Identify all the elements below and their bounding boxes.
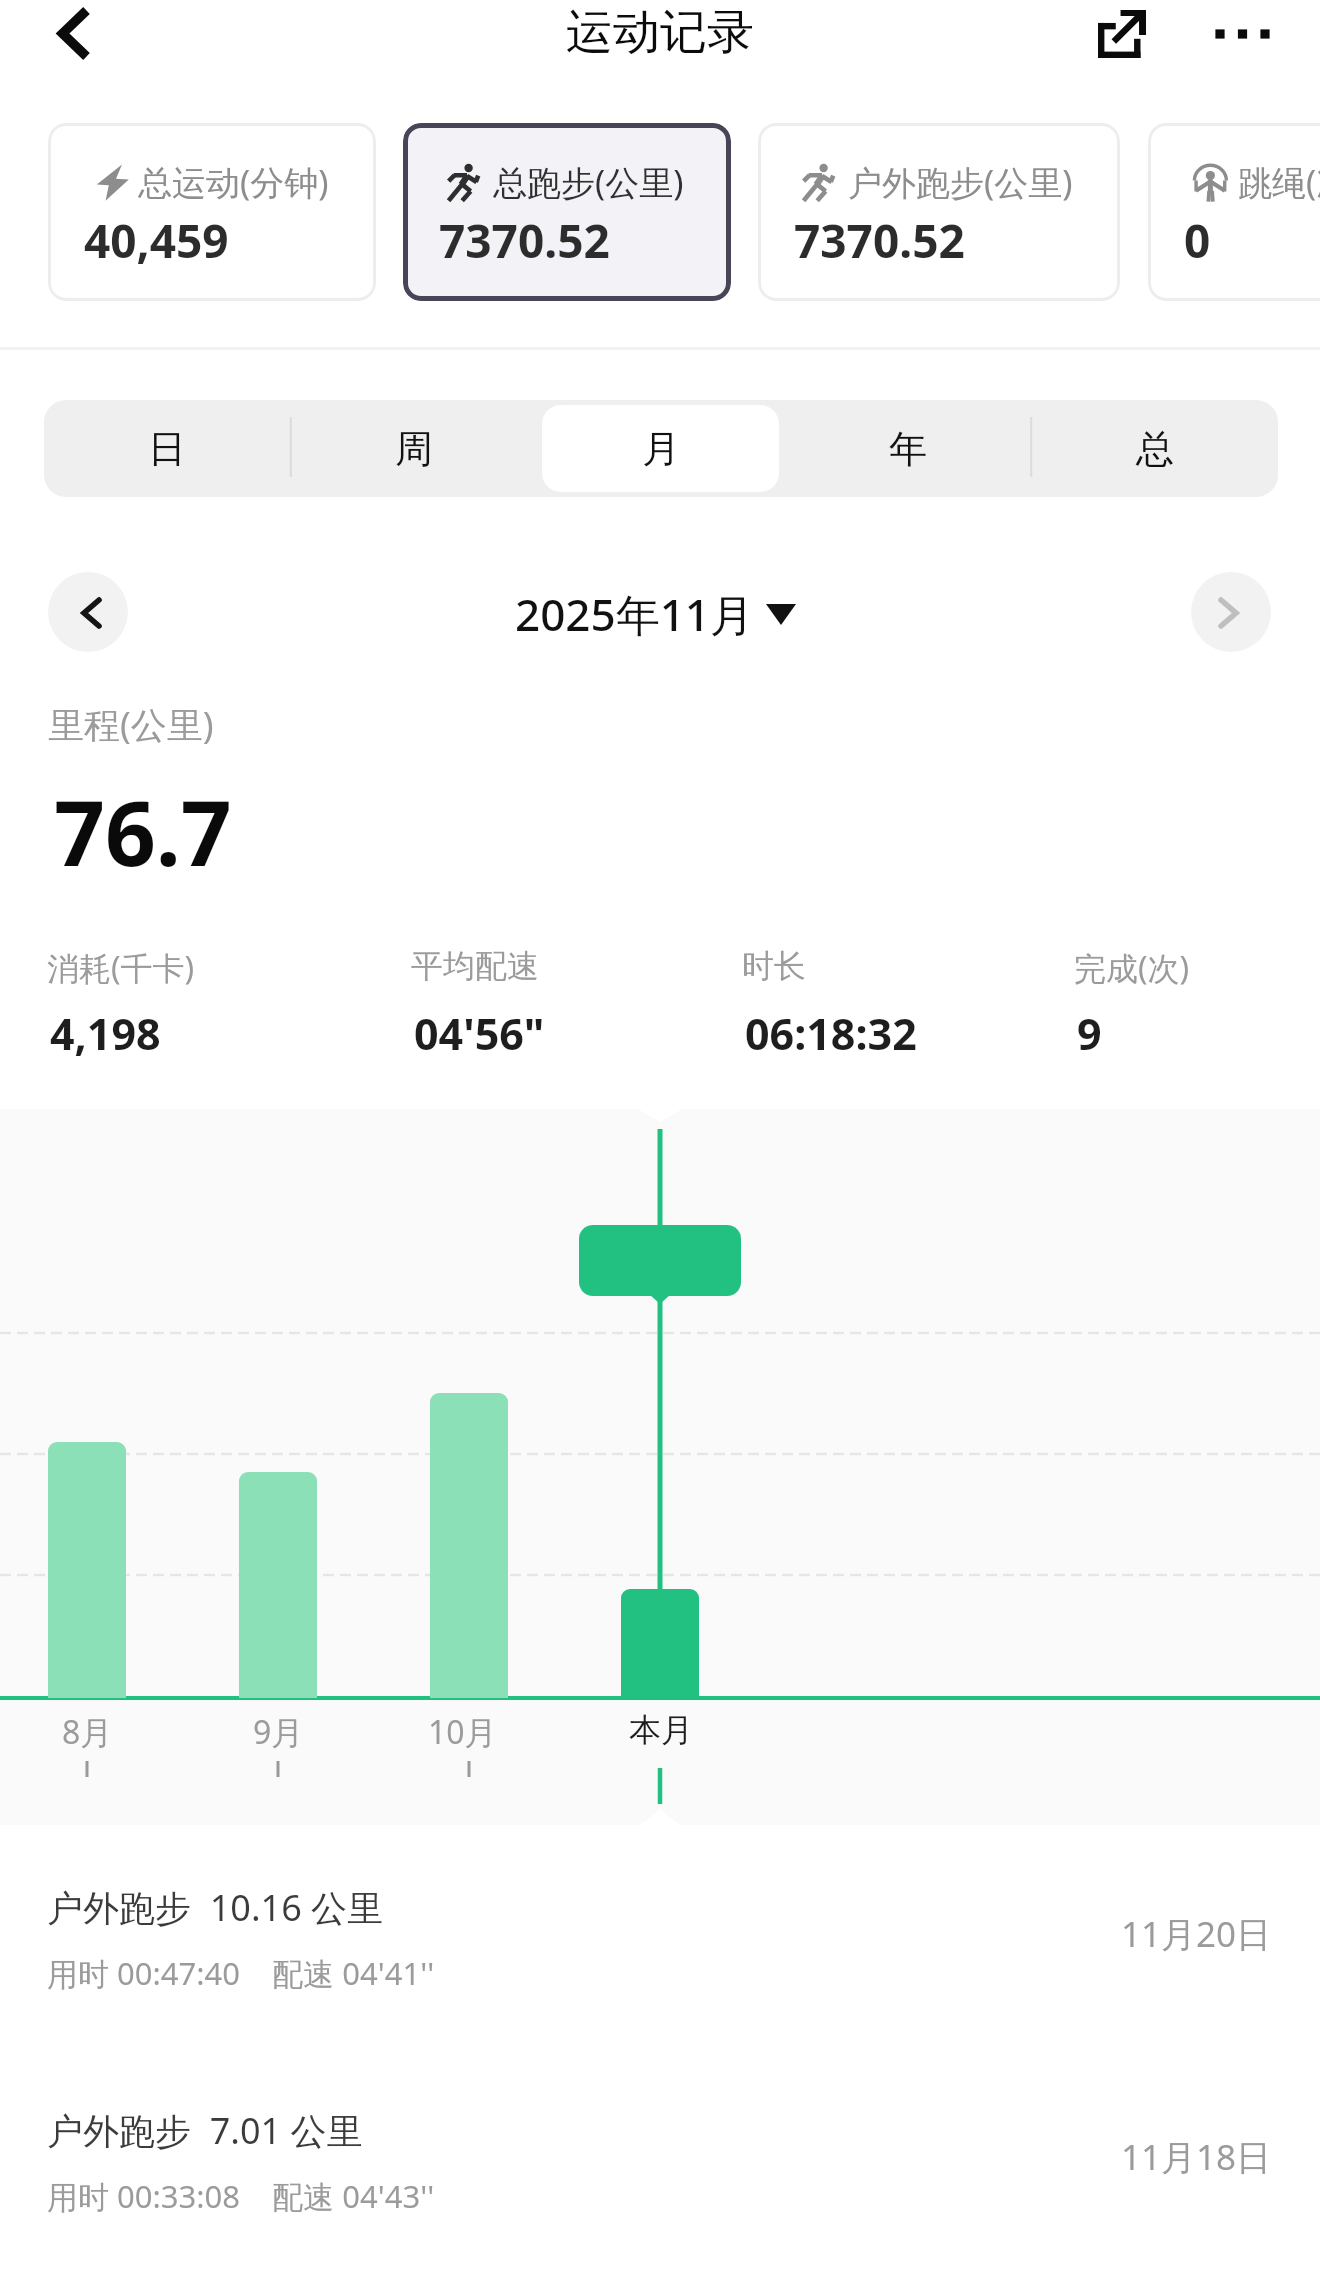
button[interactable]: Back (30, 0, 118, 68)
staticText: 日 (148, 425, 186, 473)
staticText: 9月 (253, 1710, 304, 1754)
staticText: 0 (1184, 209, 1211, 272)
staticText: 平均配速 (411, 946, 539, 986)
staticText: 周 (395, 425, 433, 473)
staticText: 总运动(分钟) (138, 159, 329, 205)
button[interactable]: 总运动(分钟) (48, 123, 376, 301)
staticText: 户外跑步 7.01 公里 (47, 2106, 363, 2155)
button[interactable]: 日 (49, 405, 285, 492)
button[interactable]: 2025年11月 (470, 572, 850, 652)
button[interactable]: Next month (1191, 572, 1271, 652)
staticText: 跳绳(次) (1238, 159, 1320, 205)
staticText: 7370.52 (794, 209, 965, 272)
button[interactable]: 户外跑步(公里) (758, 123, 1120, 301)
staticText: 总跑步(公里) (493, 159, 684, 205)
staticText: 2025年11月 (515, 584, 755, 644)
button[interactable]: 周 (295, 405, 532, 492)
button[interactable]: 户外跑步 7.01 公里 (0, 2048, 1320, 2271)
button[interactable]: 年 (789, 405, 1026, 492)
staticText: 月 (642, 425, 680, 473)
staticText: 时长 (742, 946, 806, 986)
staticText: 11月20日 (1121, 1910, 1272, 1958)
staticText: 里程(公里) (48, 700, 214, 749)
staticText: 76.7 (54, 771, 232, 892)
staticText: 年 (889, 425, 927, 473)
staticText: 4,198 (50, 1004, 161, 1063)
staticText: 消耗(千卡) (47, 946, 195, 990)
staticText: 11月18日 (1121, 2133, 1272, 2181)
staticText: 04'56" (414, 1004, 545, 1063)
button[interactable]: Previous month (48, 572, 128, 652)
staticText: 7370.52 (439, 209, 610, 272)
button[interactable]: Share (1078, 0, 1166, 68)
staticText: 户外跑步(公里) (848, 159, 1073, 205)
button[interactable]: 总跑步(公里) (403, 123, 731, 301)
staticText: 总 (1136, 425, 1174, 473)
staticText: 用时 00:33:08 配速 04'43'' (47, 2175, 435, 2217)
staticText: 40,459 (84, 209, 229, 272)
button[interactable]: More options (1190, 0, 1290, 68)
button[interactable]: 月 (542, 405, 779, 492)
staticText: 9 (1077, 1004, 1102, 1063)
staticText: 10月 (428, 1710, 497, 1754)
button[interactable]: 总 (1036, 405, 1273, 492)
staticText: 06:18:32 (745, 1004, 917, 1063)
staticText: 本月 (629, 1710, 693, 1750)
staticText: 户外跑步 10.16 公里 (47, 1883, 384, 1932)
staticText: 运动记录 (566, 3, 754, 62)
button[interactable]: 户外跑步 10.16 公里 (0, 1825, 1320, 2048)
staticText: 用时 00:47:40 配速 04'41'' (47, 1952, 435, 1994)
button[interactable]: 跳绳(次) (1148, 123, 1320, 301)
staticText: 完成(次) (1074, 946, 1190, 990)
staticText: 8月 (62, 1710, 113, 1754)
